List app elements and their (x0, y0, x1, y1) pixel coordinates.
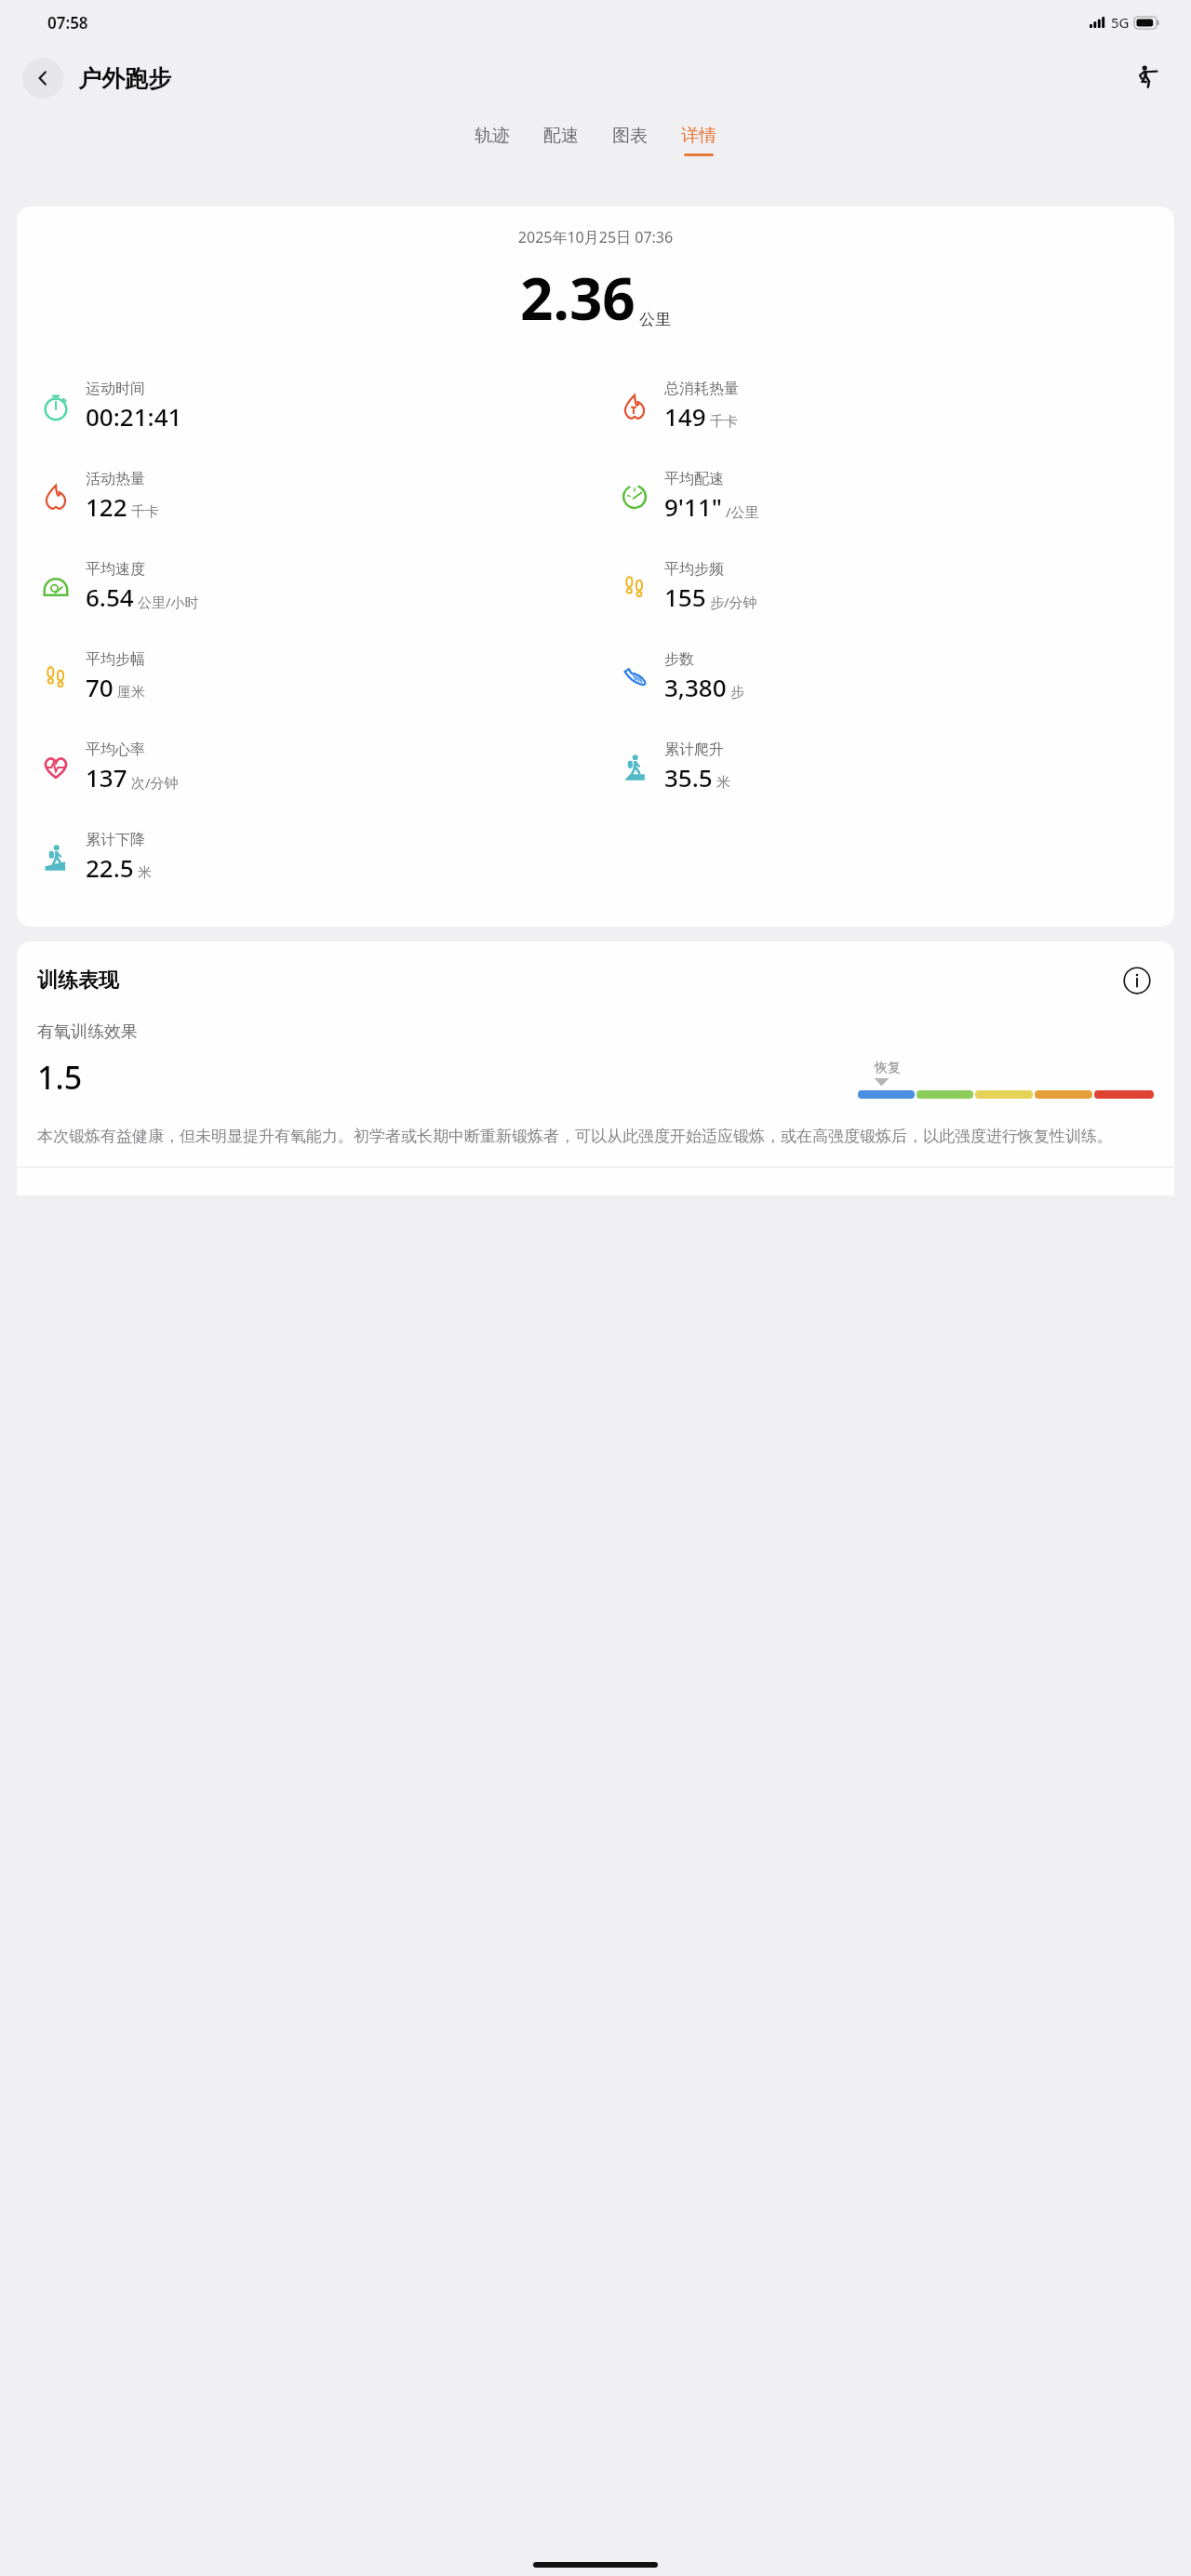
staticText: 平均步频 (664, 560, 724, 579)
staticText: 图表 (612, 125, 648, 147)
staticText: 运动时间 (86, 380, 145, 398)
staticText: 详情 (681, 125, 716, 147)
staticText: 步/分钟 (710, 593, 757, 611)
button[interactable]: 累计爬升 (616, 722, 730, 812)
staticText: 5G (1111, 13, 1130, 32)
staticText: 00:21:41 (86, 400, 182, 433)
staticText: 公里/小时 (138, 593, 199, 611)
button[interactable]: 累计下降 (37, 812, 152, 902)
staticText: 训练表现 (37, 968, 119, 994)
staticText: 总消耗热量 (664, 380, 739, 398)
staticText: 步 (730, 684, 744, 701)
staticText: 149 (664, 400, 706, 433)
staticText: 70 (86, 671, 114, 703)
staticText: 122 (86, 490, 127, 523)
staticText: 2025年10月25日 07:36 (17, 227, 1174, 247)
button[interactable]: 图表 (605, 115, 655, 166)
button[interactable]: Back (22, 58, 63, 99)
staticText: 35.5 (664, 761, 713, 794)
staticText: 本次锻炼有益健康，但未明显提升有氧能力。初学者或长期中断重新锻炼者，可以从此强度… (37, 1127, 1113, 1146)
staticText: 恢复 (875, 1060, 901, 1076)
staticText: 137 (86, 761, 127, 794)
staticText: 07:58 (47, 12, 88, 33)
staticText: 2.36 (520, 259, 636, 337)
staticText: /公里 (726, 502, 759, 521)
staticText: 厘米 (117, 684, 145, 701)
staticText: 公里 (639, 310, 671, 329)
staticText: 米 (138, 864, 152, 882)
button[interactable]: 平均速度 (37, 541, 199, 632)
staticText: 平均心率 (86, 741, 145, 759)
staticText: 6.54 (86, 581, 134, 613)
staticText: 步数 (664, 650, 694, 669)
staticText: 活动热量 (86, 470, 145, 488)
button[interactable]: 配速 (536, 115, 586, 166)
button[interactable]: 轨迹 (467, 115, 517, 166)
button[interactable]: 平均步频 (616, 541, 757, 632)
button[interactable]: Info (1120, 964, 1154, 997)
staticText: 有氧训练效果 (37, 1021, 138, 1043)
staticText: 平均步幅 (86, 650, 145, 669)
button[interactable]: 平均心率 (37, 722, 179, 812)
staticText: 平均速度 (86, 560, 145, 579)
button[interactable]: 总消耗热量 (616, 361, 739, 451)
staticText: 千卡 (131, 503, 159, 521)
staticText: 户外跑步 (78, 64, 171, 93)
staticText: 配速 (543, 125, 579, 147)
staticText: 22.5 (86, 851, 134, 884)
button[interactable]: 活动热量 (37, 451, 159, 541)
button[interactable]: 平均步幅 (37, 632, 145, 722)
staticText: 累计爬升 (664, 741, 724, 759)
button[interactable]: 详情 (674, 115, 724, 166)
staticText: 累计下降 (86, 831, 145, 849)
staticText: 平均配速 (664, 470, 724, 488)
staticText: 千卡 (710, 413, 738, 431)
button[interactable]: 步数 (616, 632, 744, 722)
staticText: 米 (716, 774, 730, 792)
button[interactable]: Activity type (1126, 58, 1167, 99)
staticText: 3,380 (664, 671, 727, 703)
staticText: 9'11" (664, 490, 722, 523)
staticText: 155 (664, 581, 706, 613)
staticText: 1.5 (37, 1056, 83, 1099)
staticText: 轨迹 (475, 125, 510, 147)
staticText: 次/分钟 (131, 773, 179, 792)
button[interactable]: 平均配速 (616, 451, 759, 541)
button[interactable]: 运动时间 (37, 361, 182, 451)
